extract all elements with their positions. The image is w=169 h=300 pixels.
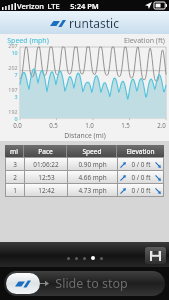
staticText: Speed: [82, 147, 102, 156]
staticText: 3: [13, 160, 17, 169]
staticText: 7: [14, 71, 18, 78]
staticText: 01:06:22: [33, 160, 59, 169]
button[interactable]: Save session: [145, 247, 166, 264]
other: Elevation gain: [120, 175, 126, 181]
staticText: 0.5: [49, 121, 58, 129]
staticText: 1: [13, 186, 17, 195]
other: Elevation gain: [120, 188, 126, 194]
staticText: Distance (mi): [64, 131, 106, 140]
staticText: 0: [14, 115, 18, 122]
button[interactable]: 2: [5, 171, 164, 183]
staticText: 1.5: [121, 121, 130, 129]
staticText: 207: [8, 42, 18, 49]
staticText: Slide to stop: [55, 275, 128, 292]
staticText: 10: [11, 49, 18, 56]
staticText: 0 / 0 ft: [131, 173, 151, 182]
staticText: 5:24 PM: [70, 1, 99, 11]
button[interactable]: 3: [5, 158, 164, 170]
staticText: 0.0: [13, 121, 22, 129]
button[interactable]: 1: [5, 184, 164, 196]
button[interactable]: Slide to stop: [4, 271, 165, 296]
staticText: Elevation: [126, 147, 155, 156]
staticText: Speed (mph): [7, 36, 49, 46]
button[interactable]: Slide to stop: [6, 273, 40, 294]
staticText: runtastic: [69, 15, 119, 31]
staticText: Verizon: [17, 1, 44, 11]
staticText: 0 / 0 ft: [131, 160, 151, 169]
staticText: Pace: [38, 147, 53, 156]
staticText: LTE: [47, 1, 60, 11]
staticText: Elevation (ft): [124, 36, 165, 46]
staticText: 197: [8, 86, 18, 93]
staticText: 0 / 0 ft: [131, 186, 151, 195]
other: Elevation loss: [155, 175, 161, 181]
staticText: 3: [14, 93, 18, 100]
staticText: 2.0: [157, 121, 166, 129]
staticText: 2: [13, 173, 17, 182]
staticText: 4.73 mph: [78, 186, 107, 195]
other: Elevation loss: [155, 188, 161, 194]
staticText: 12:42: [38, 186, 55, 195]
other: Elevation loss: [155, 162, 161, 168]
other: Elevation gain: [120, 162, 126, 168]
staticText: 1.0: [85, 121, 94, 129]
staticText: 0.90 mph: [78, 160, 107, 169]
staticText: 202: [8, 64, 18, 71]
staticText: 4.66 mph: [78, 173, 107, 182]
staticText: 12:53: [38, 173, 55, 182]
staticText: mi: [10, 147, 18, 156]
staticText: 192: [8, 108, 18, 115]
